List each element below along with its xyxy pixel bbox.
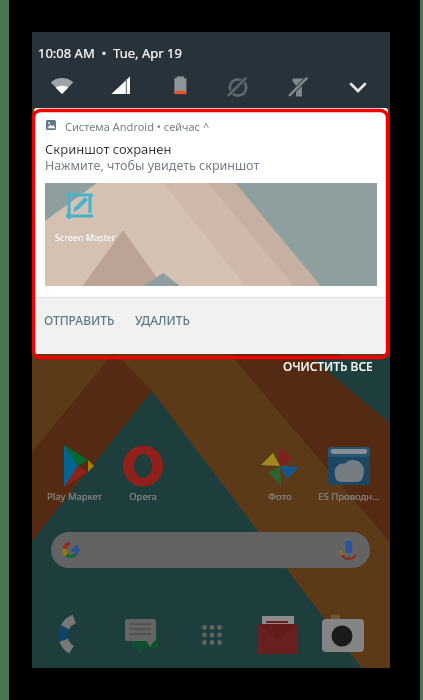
button[interactable]: Apps — [190, 613, 234, 657]
button[interactable]: ОЧИСТИТЬ ВСЕ — [283, 358, 373, 374]
button[interactable]: Search — [51, 532, 370, 568]
button[interactable]: ES Проводн… — [318, 444, 380, 503]
staticText: Opera — [129, 490, 157, 503]
staticText: Play Маркет — [47, 490, 102, 503]
button[interactable]: Play Маркет — [43, 444, 105, 503]
staticText: Скриншот сохранен — [45, 140, 172, 158]
staticText: Фото — [268, 490, 292, 503]
button[interactable]: Фото — [249, 444, 311, 503]
staticText: Screen Master — [55, 231, 116, 243]
staticText: ES Проводн… — [318, 490, 380, 503]
staticText: Нажмите, чтобы увидеть скриншот — [45, 157, 260, 174]
button[interactable]: ОТПРАВИТЬ — [36, 302, 123, 338]
button[interactable]: Opera — [112, 444, 174, 503]
button[interactable]: УДАЛИТЬ — [127, 302, 198, 338]
button[interactable]: Phone — [58, 613, 102, 657]
button[interactable]: Camera — [321, 613, 365, 657]
staticText: УДАЛИТЬ — [135, 312, 190, 328]
staticText: ОЧИСТИТЬ ВСЕ — [283, 358, 373, 374]
staticText: ОТПРАВИТЬ — [44, 312, 115, 328]
button[interactable]: Gmail — [256, 613, 300, 657]
staticText: Система Android • сейчас ^ — [65, 119, 210, 134]
button[interactable]: Система Android • сейчас ^ — [34, 108, 388, 354]
button[interactable]: Wi-Fi — [48, 74, 76, 102]
staticText: 10:08 AM • Tue, Apr 19 — [38, 44, 182, 62]
button[interactable]: Messages — [120, 613, 164, 657]
button[interactable]: Battery — [222, 74, 250, 102]
button[interactable]: Screen Master — [45, 183, 377, 286]
